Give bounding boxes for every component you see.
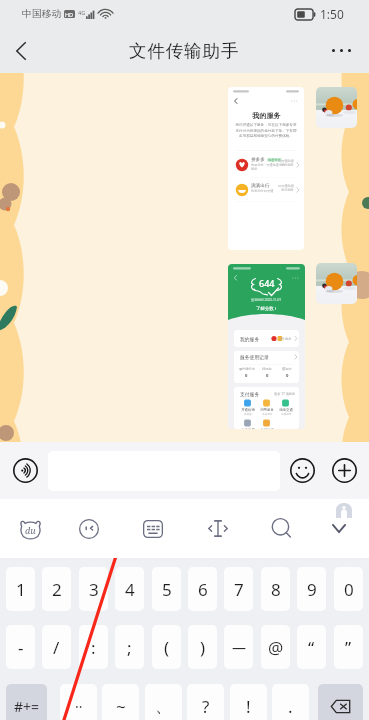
button[interactable]: Back bbox=[2, 28, 40, 73]
staticText: 8 bbox=[271, 578, 281, 601]
button[interactable]: 0 bbox=[334, 567, 363, 611]
button[interactable]: ~ bbox=[102, 684, 139, 720]
staticText: — bbox=[232, 638, 246, 657]
button[interactable]: 1 bbox=[6, 567, 35, 611]
staticText: 、 bbox=[155, 696, 172, 717]
staticText: 免押金 bbox=[244, 412, 252, 415]
staticText: 药网服务 bbox=[260, 408, 274, 412]
staticText: 履约进行中 bbox=[239, 367, 255, 371]
button[interactable]: Avatar bbox=[316, 87, 357, 128]
staticText: 待还款 bbox=[262, 367, 272, 371]
button[interactable]: ·· bbox=[60, 684, 97, 720]
button[interactable]: - bbox=[6, 625, 35, 669]
button[interactable]: 7 bbox=[224, 567, 253, 611]
staticText: 您已开通以下服务，可在以下商家专享 支付分为您提供的免付款下单、下车即 走等权益… bbox=[235, 123, 297, 138]
button[interactable]: : bbox=[79, 625, 108, 669]
staticText: 支付服务 bbox=[240, 391, 260, 397]
button[interactable]: ( bbox=[152, 625, 181, 669]
button[interactable]: 、 bbox=[145, 684, 182, 720]
button[interactable]: Emoticon bbox=[63, 505, 115, 552]
staticText: 滴滴出行 bbox=[251, 183, 270, 189]
staticText: ~ bbox=[116, 695, 126, 718]
button[interactable]: Baidu input bbox=[4, 505, 56, 552]
button[interactable]: 5 bbox=[152, 567, 181, 611]
staticText: 我的服务 bbox=[252, 111, 281, 120]
staticText: 2 bbox=[52, 578, 62, 601]
staticText: 免密支付 bbox=[268, 158, 281, 162]
staticText: 文件传输助手 bbox=[129, 40, 240, 62]
button[interactable]: ; bbox=[115, 625, 144, 669]
button[interactable]: Image message bbox=[228, 87, 304, 250]
button[interactable]: Voice message bbox=[11, 456, 40, 485]
staticText: 已开通免密 bbox=[278, 184, 294, 188]
staticText: 更新时间 2022-11-01 bbox=[251, 298, 282, 302]
staticText: 644 bbox=[259, 277, 275, 289]
button[interactable]: ? bbox=[187, 684, 224, 720]
staticText: 2个服务 bbox=[280, 337, 292, 341]
button[interactable]: / bbox=[42, 625, 71, 669]
staticText: 1:50 bbox=[320, 6, 344, 22]
button[interactable]: #+= bbox=[6, 684, 47, 720]
button[interactable]: 8 bbox=[261, 567, 290, 611]
staticText: 免押租借 bbox=[260, 428, 274, 429]
button[interactable]: Backspace bbox=[318, 684, 363, 720]
staticText: ) bbox=[200, 636, 206, 659]
button[interactable]: ” bbox=[334, 625, 363, 669]
button[interactable]: ) bbox=[188, 625, 217, 669]
button[interactable]: 4 bbox=[115, 567, 144, 611]
staticText: ? bbox=[202, 695, 210, 718]
button[interactable]: More bbox=[330, 456, 359, 485]
staticText: HD bbox=[65, 11, 74, 18]
staticText: 5 bbox=[162, 578, 172, 601]
staticText: 更多 17 项服务 bbox=[274, 392, 296, 396]
staticText: 1 bbox=[16, 578, 26, 601]
staticText: 3 bbox=[89, 578, 99, 601]
staticText: “ bbox=[308, 636, 315, 659]
staticText: 7 bbox=[234, 578, 244, 601]
staticText: 拼多多 bbox=[251, 157, 265, 163]
staticText: 先诊后付 bbox=[262, 412, 273, 415]
button[interactable]: More options bbox=[323, 28, 359, 73]
button[interactable]: Avatar bbox=[316, 263, 357, 304]
button[interactable]: — bbox=[224, 625, 253, 669]
button[interactable]: Hide keyboard bbox=[313, 505, 365, 552]
button[interactable]: 9 bbox=[297, 567, 326, 611]
staticText: 退款中 bbox=[282, 367, 292, 371]
staticText: 0 bbox=[344, 578, 354, 601]
staticText: du bbox=[25, 524, 36, 536]
button[interactable]: 6 bbox=[188, 567, 217, 611]
staticText: 服务 bbox=[251, 167, 258, 171]
staticText: #+= bbox=[14, 697, 40, 716]
staticText: ! bbox=[246, 695, 251, 718]
staticText: 支付服务 bbox=[281, 188, 294, 192]
button[interactable]: @ bbox=[261, 625, 290, 669]
staticText: 4 bbox=[125, 578, 135, 601]
staticText: ·· bbox=[75, 697, 83, 716]
button[interactable]: Keyboard bbox=[127, 505, 179, 552]
staticText: 开通租物 bbox=[241, 408, 255, 412]
button[interactable]: Cursor bbox=[192, 505, 244, 552]
staticText: 滴滴交通 bbox=[279, 408, 293, 412]
button[interactable]: Image message bbox=[228, 264, 305, 429]
button[interactable]: ! bbox=[230, 684, 267, 720]
button[interactable]: 2 bbox=[42, 567, 71, 611]
staticText: 服务使用记录 bbox=[240, 354, 269, 360]
staticText: ( bbox=[164, 636, 170, 659]
staticText: : bbox=[91, 636, 96, 659]
staticText: 我的服务 bbox=[240, 336, 260, 342]
button[interactable]: “ bbox=[297, 625, 326, 669]
staticText: 已开通免密 bbox=[278, 159, 294, 163]
button[interactable]: Search bbox=[255, 505, 307, 552]
staticText: 0 bbox=[245, 373, 248, 379]
staticText: - bbox=[18, 636, 24, 659]
button[interactable]: 3 bbox=[79, 567, 108, 611]
button[interactable]: . bbox=[272, 684, 309, 720]
staticText: ; bbox=[127, 636, 132, 659]
staticText: 支付服务 bbox=[281, 163, 294, 167]
staticText: 4G bbox=[78, 9, 86, 16]
button[interactable]: Emoji bbox=[288, 456, 317, 485]
staticText: / bbox=[53, 636, 60, 659]
staticText: 9 bbox=[307, 578, 317, 601]
staticText: . bbox=[288, 695, 293, 718]
